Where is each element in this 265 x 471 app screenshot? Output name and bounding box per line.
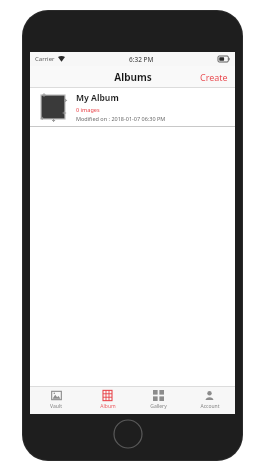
- staticText: Modified on : 2018-01-07 06:30 PM: [76, 115, 166, 122]
- button[interactable]: My Album: [30, 88, 235, 126]
- button[interactable]: Vault: [30, 387, 82, 414]
- button[interactable]: Home: [113, 419, 143, 449]
- button[interactable]: Create: [193, 66, 235, 88]
- staticText: 0 images: [76, 106, 100, 113]
- button[interactable]: Gallery: [133, 387, 184, 414]
- staticText: Create: [200, 71, 228, 83]
- staticText: My Album: [76, 92, 119, 104]
- staticText: 6:32 PM: [129, 55, 154, 64]
- staticText: Gallery: [150, 403, 167, 410]
- staticText: Carrier: [35, 55, 55, 63]
- button[interactable]: Account: [184, 387, 235, 414]
- staticText: Album: [100, 403, 116, 410]
- staticText: Account: [200, 403, 220, 410]
- button[interactable]: Album: [82, 387, 133, 414]
- staticText: Albums: [114, 70, 152, 84]
- staticText: Vault: [50, 403, 62, 410]
